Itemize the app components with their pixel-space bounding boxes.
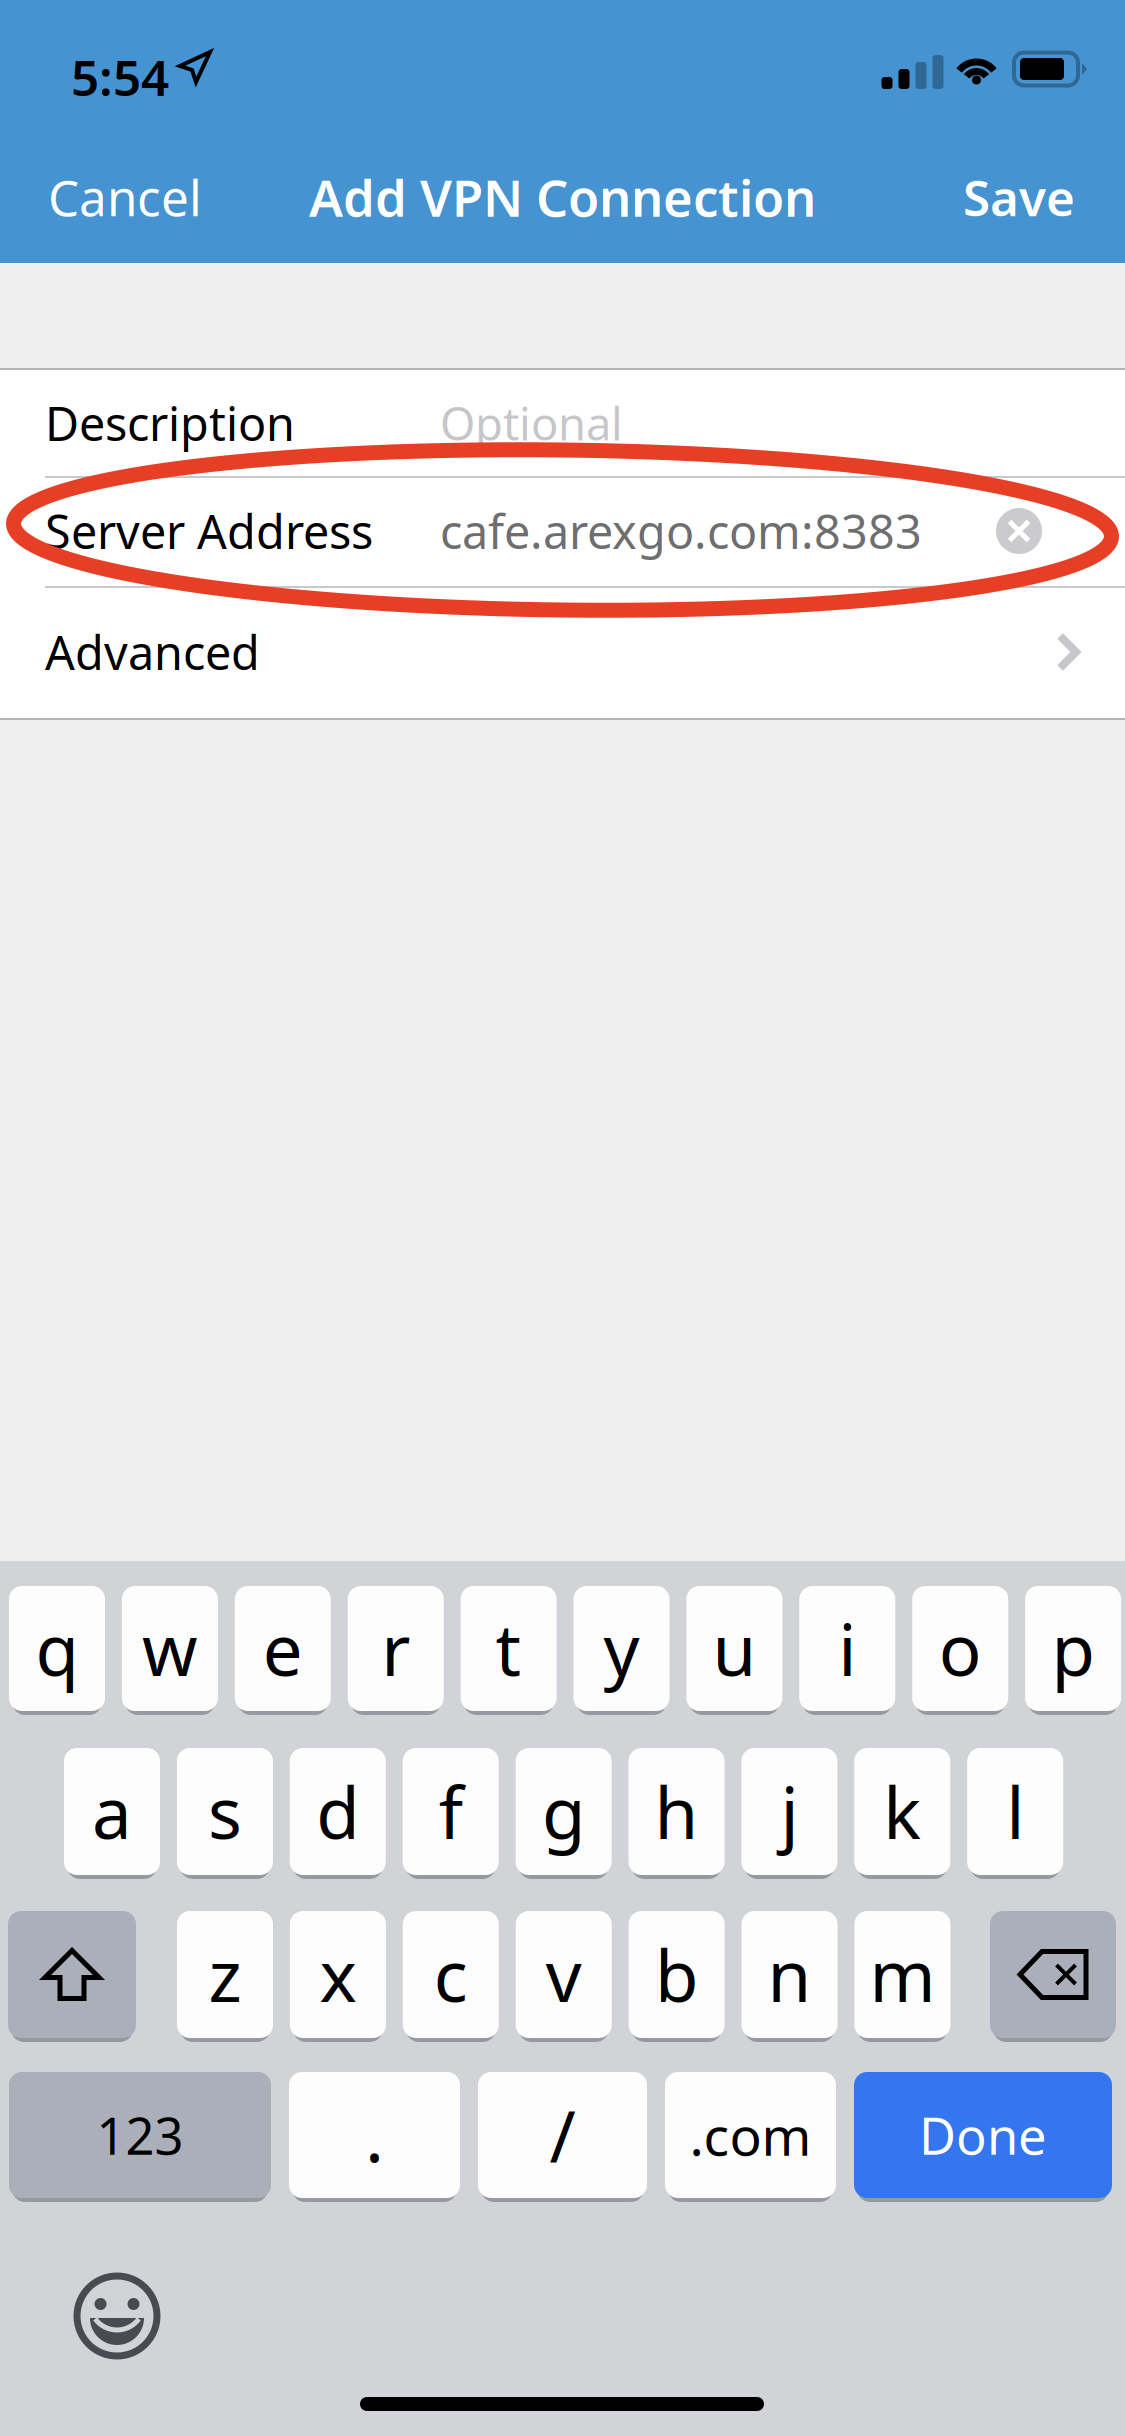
staticText: l <box>1006 1765 1024 1858</box>
staticText: n <box>767 1928 811 2021</box>
staticText: z <box>208 1928 241 2021</box>
button[interactable]: p <box>1025 1586 1121 1715</box>
staticText: u <box>712 1602 756 1695</box>
button[interactable]: y <box>573 1586 669 1715</box>
button[interactable]: 123 <box>9 2072 271 2202</box>
button[interactable]: . <box>289 2072 460 2202</box>
button[interactable]: .com <box>665 2072 836 2202</box>
button[interactable]: Shift <box>8 1911 136 2042</box>
button[interactable]: h <box>628 1748 724 1879</box>
button[interactable]: Cancel <box>0 132 232 262</box>
button[interactable]: u <box>686 1586 782 1715</box>
staticText: Save <box>963 164 1075 230</box>
staticText: w <box>142 1602 198 1695</box>
button[interactable]: i <box>799 1586 895 1715</box>
staticText: r <box>381 1602 410 1695</box>
button[interactable]: w <box>122 1586 218 1715</box>
button[interactable]: n <box>741 1911 837 2042</box>
button[interactable]: t <box>461 1586 557 1715</box>
button[interactable]: j <box>741 1748 837 1879</box>
staticText: Optional <box>440 393 623 453</box>
button[interactable]: Advanced <box>0 586 1125 718</box>
staticText: v <box>546 1928 582 2021</box>
staticText: Server Address <box>45 500 373 562</box>
button[interactable]: Done <box>854 2072 1112 2202</box>
button[interactable]: d <box>290 1748 386 1879</box>
staticText: e <box>263 1602 303 1695</box>
staticText: d <box>316 1765 359 1858</box>
staticText: s <box>208 1765 242 1858</box>
button[interactable]: q <box>9 1586 105 1715</box>
staticText: Add VPN Connection <box>309 163 816 231</box>
button[interactable]: m <box>854 1911 950 2042</box>
staticText: g <box>542 1765 585 1858</box>
staticText: m <box>869 1928 935 2021</box>
staticText: Advanced <box>45 621 260 683</box>
button[interactable]: Emoji <box>69 2268 165 2364</box>
staticText: f <box>439 1765 463 1858</box>
staticText: c <box>434 1928 468 2021</box>
button[interactable]: / <box>478 2072 647 2202</box>
button[interactable]: s <box>177 1748 273 1879</box>
button[interactable]: Delete <box>990 1911 1116 2042</box>
staticText: q <box>35 1602 78 1695</box>
staticText: h <box>654 1765 698 1858</box>
button[interactable]: e <box>235 1586 331 1715</box>
button[interactable]: x <box>290 1911 386 2042</box>
button[interactable]: b <box>629 1911 725 2042</box>
button[interactable]: k <box>854 1748 950 1879</box>
staticText: y <box>603 1602 639 1695</box>
button[interactable]: r <box>348 1586 444 1715</box>
button[interactable]: g <box>516 1748 612 1879</box>
button[interactable]: Description <box>0 370 1125 476</box>
staticText: p <box>1052 1602 1095 1695</box>
button[interactable]: Save <box>933 132 1125 262</box>
staticText: b <box>655 1928 698 2021</box>
button[interactable]: l <box>967 1748 1063 1879</box>
staticText: cafe.arexgo.com:8383 <box>440 500 922 562</box>
staticText: .com <box>689 2100 811 2170</box>
staticText: t <box>496 1602 522 1695</box>
staticText: Cancel <box>48 164 202 230</box>
button[interactable]: o <box>912 1586 1008 1715</box>
staticText: 123 <box>96 2101 183 2169</box>
staticText: k <box>883 1765 921 1858</box>
staticText: Description <box>45 392 295 454</box>
button[interactable]: z <box>177 1911 273 2042</box>
staticText: x <box>319 1928 356 2021</box>
button[interactable]: Server Address <box>0 476 1125 586</box>
button[interactable]: v <box>516 1911 612 2042</box>
staticText: i <box>838 1602 856 1695</box>
staticText: o <box>939 1602 982 1695</box>
button[interactable]: f <box>403 1748 499 1879</box>
staticText: . <box>365 2088 384 2182</box>
button[interactable]: c <box>403 1911 499 2042</box>
staticText: Done <box>919 2101 1047 2169</box>
staticText: 5:54 <box>71 44 169 109</box>
staticText: / <box>549 2088 575 2182</box>
staticText: j <box>780 1765 798 1858</box>
staticText: a <box>92 1765 132 1858</box>
button[interactable]: a <box>64 1748 160 1879</box>
